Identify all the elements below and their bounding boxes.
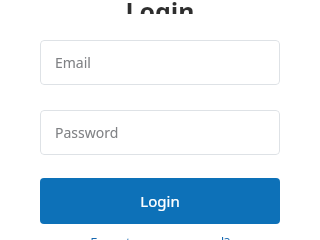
staticText: Login	[140, 191, 180, 211]
button[interactable]: Forgot your password?	[40, 233, 280, 240]
staticText: Login	[125, 0, 195, 14]
staticText: Forgot your password?	[90, 233, 230, 240]
button[interactable]: Login	[40, 178, 280, 224]
staticText: Email	[55, 53, 91, 72]
button[interactable]: Password	[40, 110, 280, 155]
button[interactable]: Email	[40, 40, 280, 85]
staticText: Password	[55, 123, 119, 142]
